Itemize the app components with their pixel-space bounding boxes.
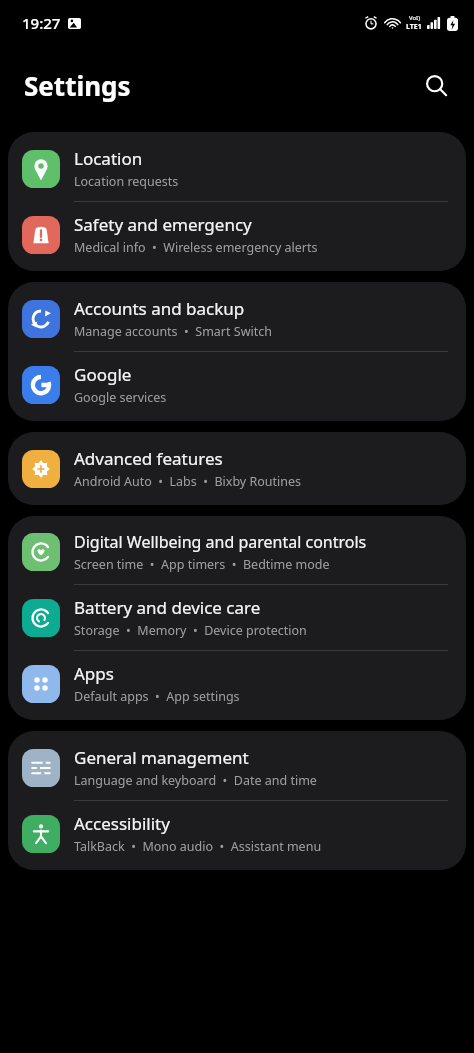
staticText: 19:27 [22,13,61,33]
button[interactable]: Battery and device care [8,585,466,650]
button[interactable]: Accounts and backup [8,286,466,351]
button[interactable]: Safety and emergency [8,202,466,267]
staticText: Safety and emergency [74,213,252,236]
staticText: Language and keyboard • Date and time [74,772,317,789]
staticText: Screen time • App timers • Bedtime mode [74,556,330,573]
staticText: Default apps • App settings [74,688,240,705]
button[interactable]: Google [8,352,466,417]
button[interactable]: Search [414,63,458,107]
staticText: TalkBack • Mono audio • Assistant menu [74,838,322,855]
staticText: Settings [24,68,131,103]
staticText: Digital Wellbeing and parental controls [74,531,367,553]
staticText: LTE1 [406,22,422,32]
button[interactable]: Digital Wellbeing and parental controls [8,520,466,584]
staticText: Location [74,147,143,170]
staticText: Google [74,363,132,386]
staticText: Accounts and backup [74,297,245,320]
staticText: Apps [74,662,114,685]
staticText: Battery and device care [74,596,261,619]
button[interactable]: Location [8,136,466,201]
staticText: Advanced features [74,447,223,470]
staticText: Accessibility [74,812,170,835]
staticText: VoI) [409,14,420,22]
button[interactable]: Accessibility [8,801,466,866]
staticText: Android Auto • Labs • Bixby Routines [74,473,302,490]
button[interactable]: Apps [8,651,466,716]
staticText: General management [74,746,249,769]
staticText: Medical info • Wireless emergency alerts [74,239,318,256]
staticText: Storage • Memory • Device protection [74,622,307,639]
button[interactable]: General management [8,735,466,800]
button[interactable]: Advanced features [8,436,466,501]
staticText: Manage accounts • Smart Switch [74,323,272,340]
staticText: Location requests [74,173,179,190]
staticText: Google services [74,389,167,406]
